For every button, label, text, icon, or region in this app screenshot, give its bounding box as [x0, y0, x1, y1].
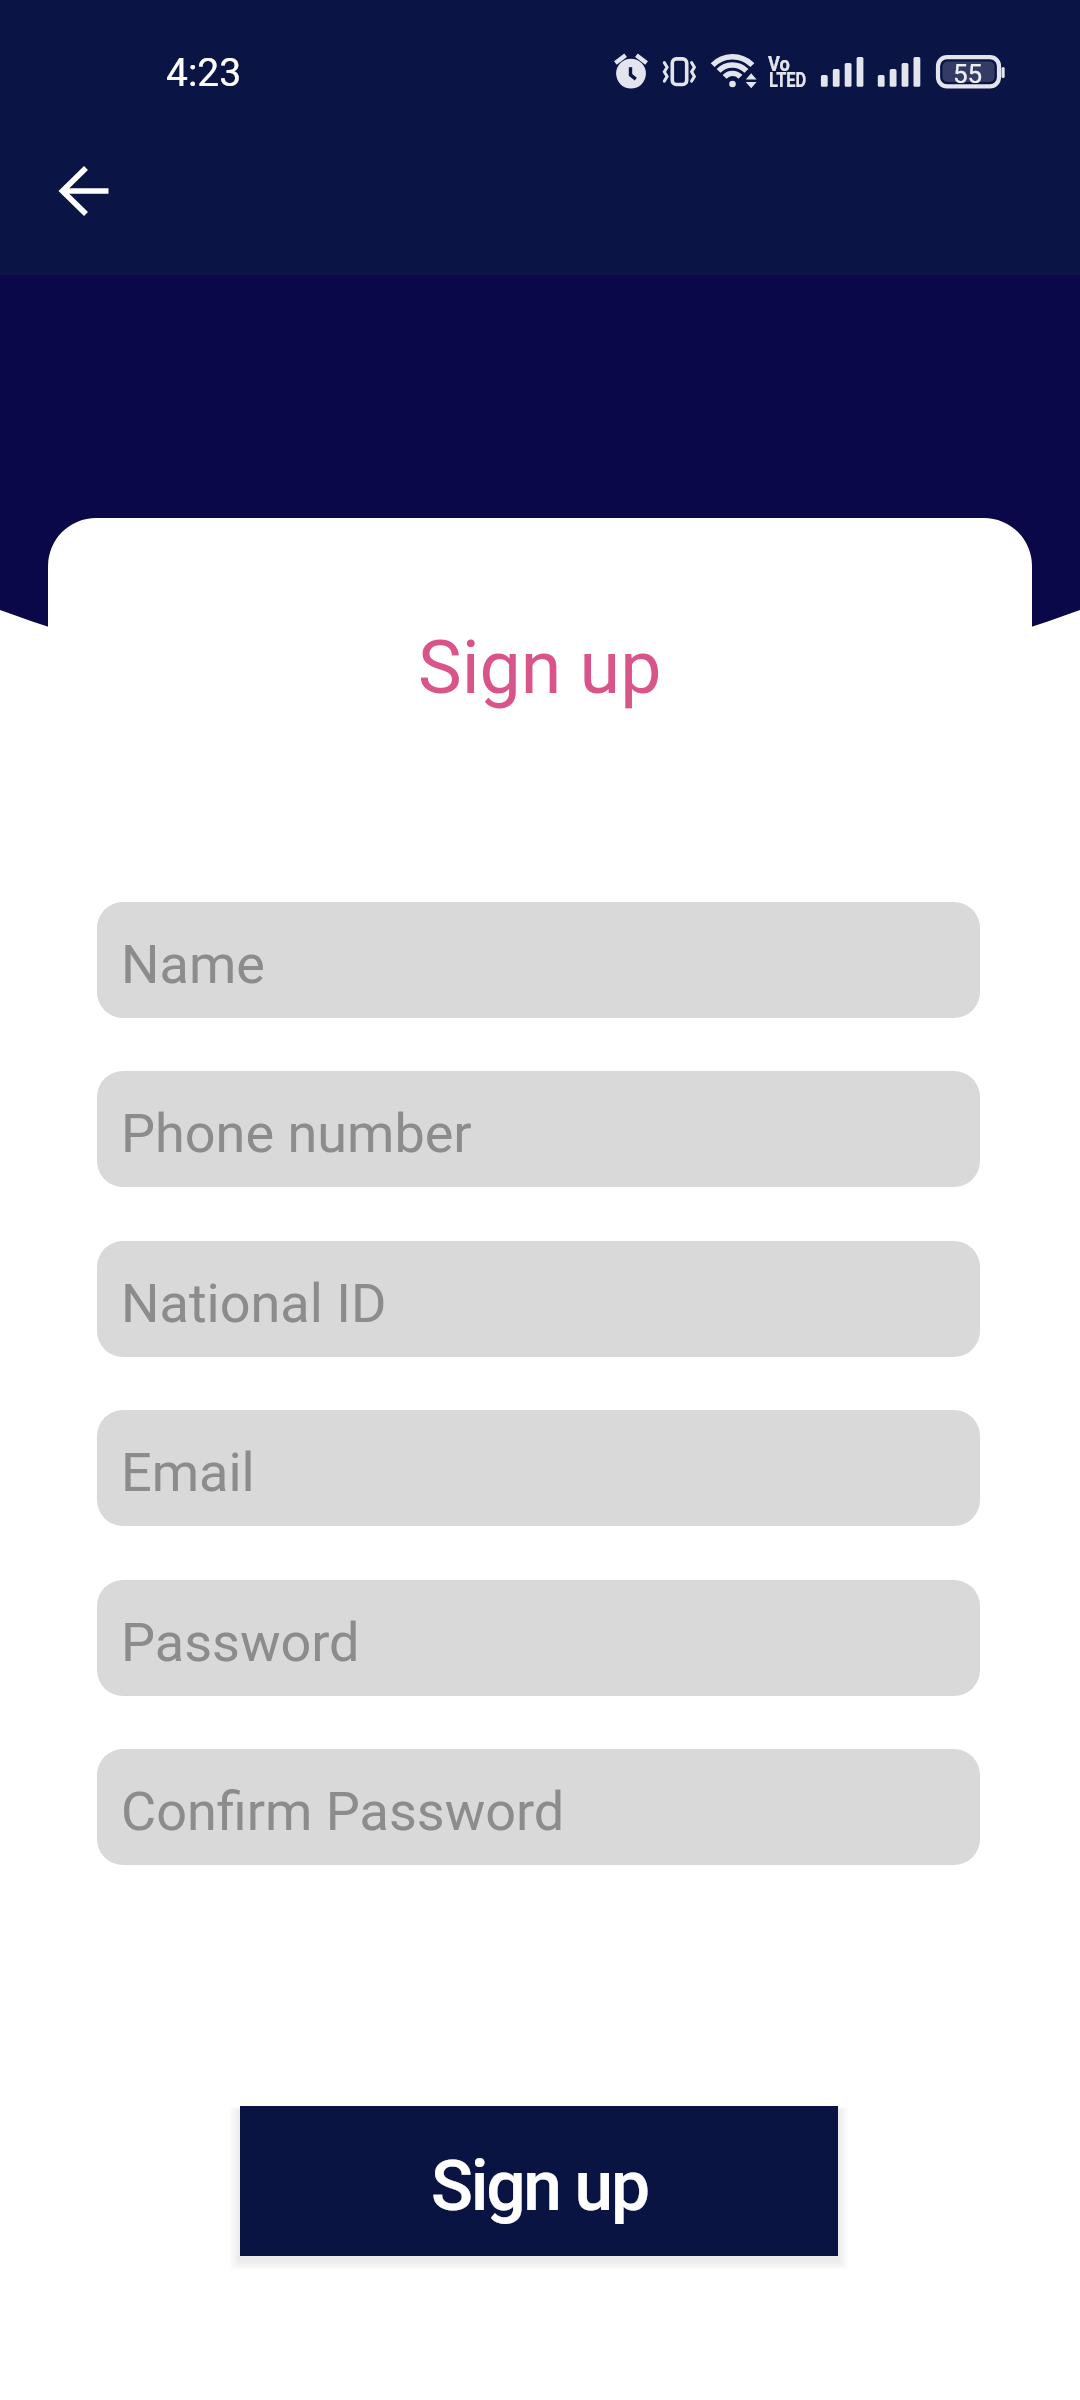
button[interactable]: Phone number: [97, 1071, 980, 1187]
staticText: National ID: [121, 1272, 387, 1335]
button[interactable]: Password: [97, 1580, 980, 1696]
staticText: Vo: [768, 52, 791, 77]
staticText: Name: [121, 933, 265, 996]
button[interactable]: Sign up: [240, 2106, 838, 2256]
staticText: Sign up: [418, 625, 662, 711]
staticText: 4:23: [166, 50, 242, 96]
staticText: Sign up: [431, 2146, 648, 2227]
button[interactable]: Confirm Password: [97, 1749, 980, 1865]
staticText: 55: [953, 59, 983, 89]
staticText: LTED: [769, 68, 806, 93]
button[interactable]: Name: [97, 902, 980, 1018]
staticText: Confirm Password: [121, 1780, 565, 1843]
staticText: Password: [121, 1611, 360, 1674]
staticText: Email: [121, 1441, 255, 1504]
staticText: Phone number: [121, 1102, 472, 1165]
button[interactable]: Email: [97, 1410, 980, 1526]
button[interactable]: National ID: [97, 1241, 980, 1357]
button[interactable]: Back: [24, 131, 144, 251]
